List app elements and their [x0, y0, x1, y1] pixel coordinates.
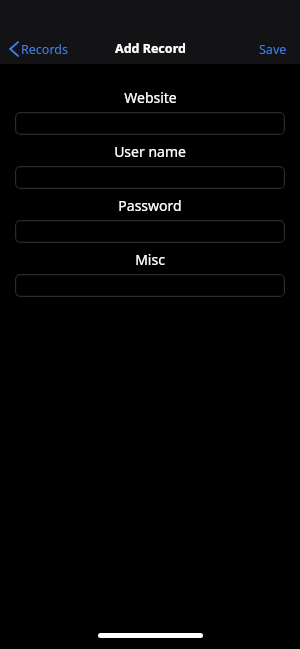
button[interactable]: Website input field — [15, 112, 285, 135]
button[interactable]: Save — [244, 34, 300, 64]
button[interactable]: User name input field — [15, 166, 285, 189]
staticText: Save — [259, 41, 287, 58]
button[interactable]: Password input field — [15, 220, 285, 243]
staticText: Records — [21, 41, 68, 58]
staticText: Add Record — [115, 40, 186, 57]
staticText: Password — [118, 196, 182, 215]
button[interactable]: Misc input field — [15, 274, 285, 297]
button[interactable]: Records — [9, 34, 68, 64]
staticText: User name — [114, 142, 186, 161]
staticText: Website — [124, 88, 177, 107]
staticText: Misc — [135, 250, 165, 269]
